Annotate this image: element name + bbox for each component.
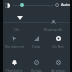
staticText: Rotate — [31, 68, 42, 72]
button[interactable]: Expand quick settings — [15, 13, 25, 23]
button[interactable]: No internet — [3, 33, 25, 53]
staticText: No internet — [5, 44, 24, 49]
staticText: Flashlight — [6, 68, 22, 72]
button[interactable]: Airplane — [47, 57, 69, 72]
staticText: Airplane — [51, 68, 65, 72]
staticText: Do Not Disturb — [47, 44, 69, 49]
button[interactable]: Rotate — [25, 57, 47, 72]
staticText: Auto — [61, 2, 70, 7]
button[interactable]: Bluetooth — [43, 18, 63, 33]
button[interactable]: On — [7, 18, 27, 33]
button[interactable]: Brightness — [2, 0, 13, 11]
staticText: Data — [32, 44, 40, 49]
button[interactable]: Data — [25, 33, 47, 53]
staticText: Bluetooth — [44, 27, 63, 32]
button[interactable]: Auto brightness — [52, 0, 62, 10]
staticText: On — [14, 27, 20, 32]
button[interactable]: Do Not Disturb — [47, 33, 69, 53]
button[interactable]: Flashlight — [3, 57, 25, 72]
